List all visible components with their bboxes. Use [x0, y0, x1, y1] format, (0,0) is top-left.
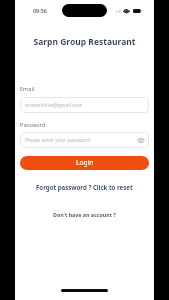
staticText: Please enter your password: [25, 137, 91, 144]
staticText: Don't have an account ?: [53, 211, 116, 218]
staticText: Password: [20, 121, 46, 129]
button[interactable]: Please enter your password: [20, 132, 149, 148]
other: Show password: [138, 138, 144, 143]
button[interactable]: lovelmitchie@gmail.com: [20, 97, 149, 113]
staticText: Login: [76, 158, 94, 167]
staticText: Sarpn Group Restaurant: [33, 36, 136, 47]
staticText: Email: [20, 85, 35, 93]
button[interactable]: Forgot password ? Click to reset: [15, 182, 154, 192]
staticText: lovelmitchie@gmail.com: [25, 102, 83, 109]
button[interactable]: Login: [20, 156, 149, 170]
staticText: 09:56: [33, 7, 47, 14]
staticText: Forgot password ? Click to reset: [36, 183, 133, 191]
button[interactable]: Don't have an account ?: [15, 209, 154, 219]
